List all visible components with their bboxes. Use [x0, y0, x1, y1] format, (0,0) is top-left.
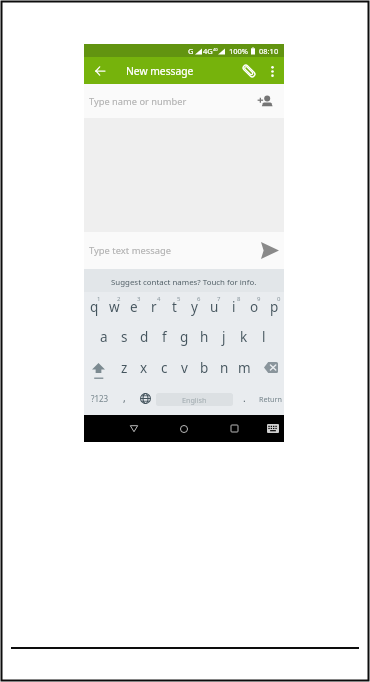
button[interactable]: h — [194, 322, 214, 351]
button[interactable]: 9 — [244, 294, 264, 323]
staticText: x — [140, 359, 148, 377]
button[interactable]: Attach — [239, 61, 259, 81]
staticText: g — [180, 328, 189, 346]
staticText: 100% — [229, 46, 249, 56]
button[interactable]: 4 — [144, 294, 164, 323]
button[interactable]: s — [114, 322, 134, 351]
staticText: f — [162, 328, 167, 346]
button[interactable]: x — [134, 353, 154, 382]
staticText: z — [121, 359, 128, 377]
staticText: r — [151, 298, 157, 316]
staticText: j — [222, 328, 226, 346]
button[interactable]: g — [174, 322, 194, 351]
staticText: 3 — [137, 295, 141, 303]
button[interactable]: 3 — [124, 294, 144, 323]
staticText: Type name or number — [89, 95, 187, 108]
staticText: Type text message — [89, 244, 172, 257]
button[interactable]: Return — [257, 384, 283, 413]
button[interactable]: Backspace — [261, 353, 281, 382]
staticText: e — [130, 298, 138, 316]
button[interactable]: c — [154, 353, 174, 382]
staticText: 2 — [117, 295, 121, 303]
staticText: 5 — [177, 295, 181, 303]
staticText: 6 — [197, 295, 201, 303]
button[interactable]: 1 — [84, 294, 104, 323]
button[interactable]: z — [114, 353, 134, 382]
button[interactable]: j — [214, 322, 234, 351]
staticText: 8 — [237, 295, 241, 303]
staticText: q — [90, 298, 99, 316]
button[interactable]: 5 — [164, 294, 184, 323]
button[interactable]: Add contact — [254, 90, 274, 110]
button[interactable]: Back — [124, 415, 144, 442]
button[interactable]: . — [236, 383, 252, 412]
staticText: 7 — [217, 295, 221, 303]
staticText: w — [109, 298, 120, 316]
button[interactable]: Recents — [224, 415, 244, 442]
button[interactable]: English — [156, 393, 233, 406]
staticText: Return — [259, 394, 282, 404]
staticText: n — [220, 359, 229, 377]
button[interactable]: f — [154, 322, 174, 351]
button[interactable]: d — [134, 322, 154, 351]
staticText: 0 — [277, 295, 281, 303]
button[interactable]: Shift — [88, 357, 108, 386]
button[interactable]: More options — [263, 62, 281, 80]
staticText: k — [240, 328, 248, 346]
button[interactable]: Back — [90, 61, 110, 81]
staticText: 9 — [257, 295, 261, 303]
button[interactable]: a — [94, 322, 114, 351]
staticText: d — [140, 328, 149, 346]
staticText: p — [270, 298, 279, 316]
staticText: b — [200, 359, 209, 377]
button[interactable]: k — [234, 322, 254, 351]
button[interactable]: Change language — [137, 384, 153, 413]
button[interactable]: 2 — [104, 294, 124, 323]
button[interactable]: 8 — [224, 294, 244, 323]
staticText: 4 — [157, 295, 161, 303]
button[interactable]: Switch keyboard — [263, 415, 283, 442]
button[interactable]: b — [194, 353, 214, 382]
staticText: m — [238, 359, 251, 377]
staticText: 4G — [203, 46, 213, 56]
staticText: 1 — [97, 295, 101, 303]
staticText: v — [181, 359, 188, 377]
staticText: 08:10 — [259, 46, 279, 56]
staticText: English — [182, 395, 207, 405]
button[interactable]: v — [174, 353, 194, 382]
button[interactable]: , — [116, 383, 132, 412]
staticText: o — [250, 298, 259, 316]
staticText: y — [191, 298, 198, 316]
staticText: h — [200, 328, 209, 346]
staticText: 40 — [213, 47, 218, 52]
staticText: i — [232, 298, 236, 316]
button[interactable]: l — [254, 322, 274, 351]
staticText: a — [100, 328, 108, 346]
button[interactable]: Suggest contact names? Touch for info. — [84, 269, 284, 292]
staticText: c — [161, 359, 168, 377]
staticText: New message — [126, 64, 194, 78]
button[interactable]: m — [234, 353, 254, 382]
staticText: , — [123, 391, 126, 405]
button[interactable]: Home — [174, 415, 194, 442]
button[interactable]: 7 — [204, 294, 224, 323]
button[interactable]: 6 — [184, 294, 204, 323]
button[interactable]: ?123 — [88, 384, 112, 413]
staticText: Suggest contact names? Touch for info. — [111, 277, 257, 288]
button[interactable]: Send — [257, 233, 283, 268]
staticText: s — [121, 328, 128, 346]
staticText: G — [188, 46, 194, 56]
button[interactable]: n — [214, 353, 234, 382]
staticText: u — [210, 298, 219, 316]
button[interactable]: 0 — [264, 294, 284, 323]
staticText: l — [262, 328, 266, 346]
staticText: t — [172, 298, 177, 316]
staticText: ?123 — [91, 393, 109, 404]
staticText: . — [243, 391, 246, 405]
